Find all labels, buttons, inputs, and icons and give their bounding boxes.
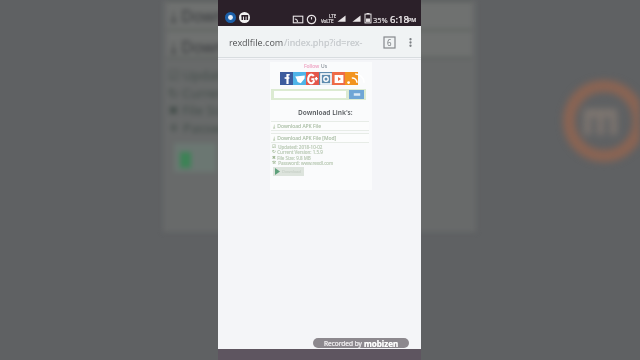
staticText: 6:18 xyxy=(390,13,409,26)
staticText: Download APK File [Mod] xyxy=(276,135,337,142)
button[interactable]: Search xyxy=(349,90,364,99)
staticText: Updated: 2018-10-02 xyxy=(277,144,323,150)
button[interactable]: ⤓ xyxy=(271,121,369,131)
staticText: ⚘ Password: www.rexdl.com xyxy=(168,119,343,137)
staticText: Current Version: 1.5.9 xyxy=(276,149,323,155)
staticText: ⤓ xyxy=(273,124,276,129)
staticText: PM xyxy=(408,16,417,23)
button[interactable]: YouTube xyxy=(332,72,345,85)
staticText: ⤓ xyxy=(273,136,276,141)
button[interactable]: Download xyxy=(273,167,304,176)
staticText: VoLTE xyxy=(321,18,334,24)
staticText: mobizen xyxy=(364,338,399,348)
button[interactable]: Facebook xyxy=(280,72,293,85)
staticText: /index.php?id=rex- xyxy=(284,36,363,48)
staticText: 6 xyxy=(387,37,392,48)
button[interactable]: Instagram xyxy=(319,72,332,85)
staticText: ✖ xyxy=(272,155,276,160)
staticText: ⤓ Download APK File [Mod] xyxy=(170,36,370,58)
staticText: ⤓ Download APK File xyxy=(170,5,322,27)
staticText: ☑ xyxy=(272,144,277,149)
button[interactable]: RSS xyxy=(345,72,358,85)
button[interactable]: Google Plus xyxy=(306,72,319,85)
button[interactable]: Twitter xyxy=(293,72,306,85)
staticText: LTE xyxy=(329,13,337,19)
staticText: Recorded by xyxy=(324,339,364,348)
staticText: ↻ xyxy=(272,149,276,154)
button[interactable]: ⤓ xyxy=(271,133,369,143)
button[interactable]: Tabs xyxy=(384,37,395,48)
staticText: Download Link's: xyxy=(298,108,353,117)
staticText: ↻ Current Version: 1.5.9 xyxy=(168,84,315,102)
staticText: Follow xyxy=(304,63,321,70)
button[interactable]: More options xyxy=(404,36,417,49)
staticText: Password: www.rexdl.com xyxy=(277,160,334,166)
staticText: rexdlfile.com xyxy=(229,36,284,48)
staticText: ☑ Updated: 2018-10-02 xyxy=(168,66,311,84)
staticText: Download APK File xyxy=(276,123,322,130)
staticText: ✖ File Size: 9.8 MB xyxy=(168,101,280,119)
staticText: File Size: 9.8 MB xyxy=(276,155,311,161)
staticText: ⚒ xyxy=(272,160,277,165)
staticText: Download xyxy=(282,169,302,174)
staticText: 35% xyxy=(373,15,388,25)
staticText: Us xyxy=(321,63,328,70)
